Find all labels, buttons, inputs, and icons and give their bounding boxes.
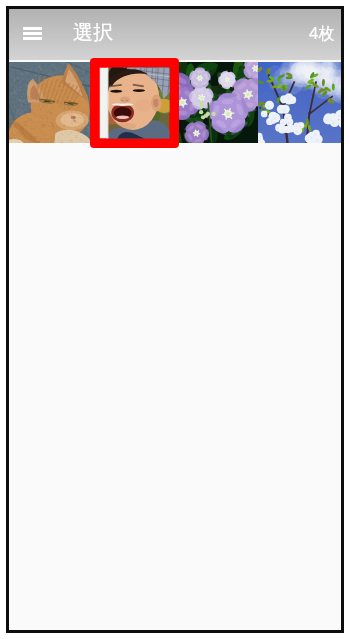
- button[interactable]: Menu: [12, 13, 52, 53]
- button[interactable]: Photo 2: [92, 62, 175, 143]
- button[interactable]: Selected photo: [90, 58, 179, 148]
- staticText: 選択: [73, 20, 113, 45]
- button[interactable]: Photo 4: [258, 62, 341, 143]
- button[interactable]: Photo 1: [9, 62, 92, 143]
- staticText: 4枚: [309, 22, 335, 44]
- button[interactable]: Photo 3: [175, 62, 258, 143]
